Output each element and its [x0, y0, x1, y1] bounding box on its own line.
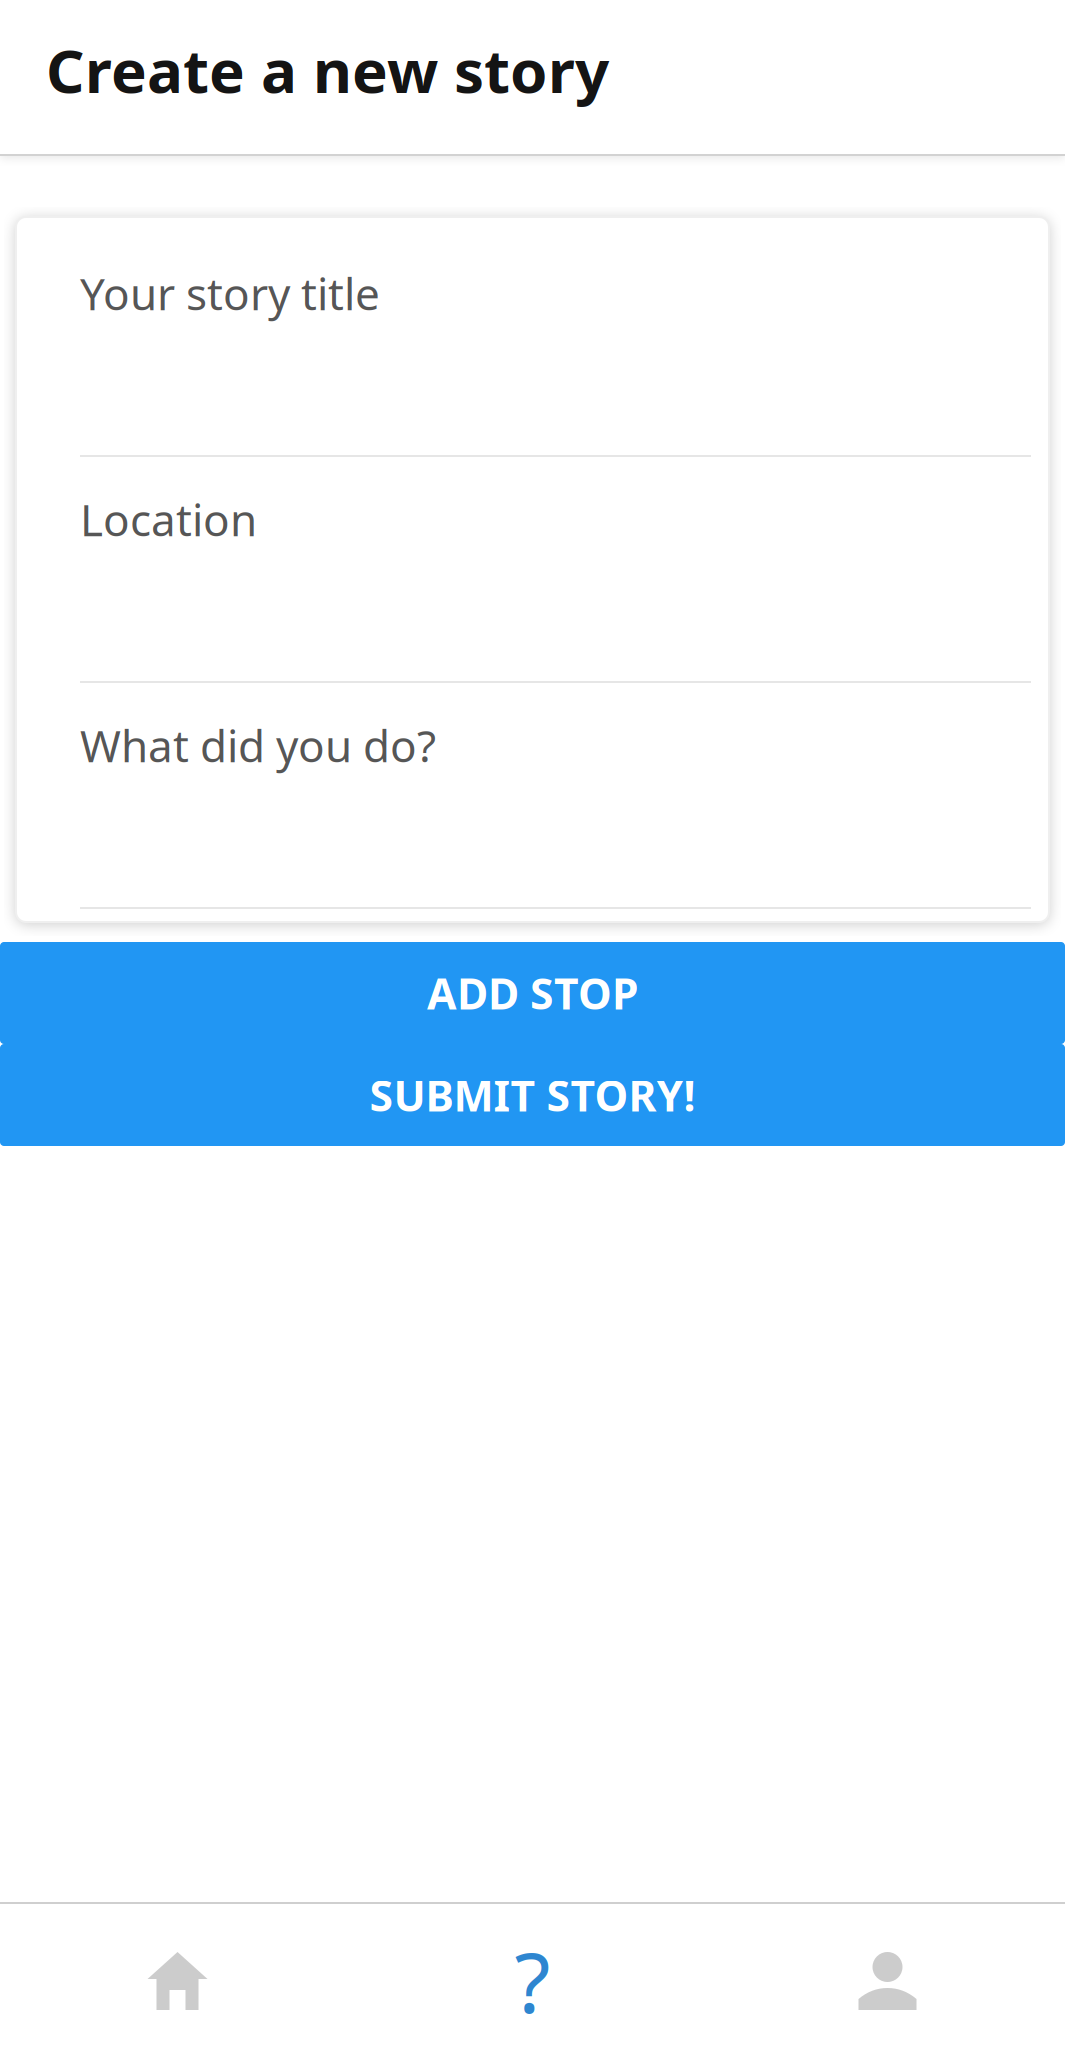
button[interactable]: ADD STOP	[0, 942, 1065, 1044]
button[interactable]: Your story title	[16, 231, 1049, 457]
staticText: ?	[514, 1926, 550, 2036]
staticText: SUBMIT STORY!	[369, 1067, 695, 1123]
button[interactable]: SUBMIT STORY!	[0, 1044, 1065, 1146]
button[interactable]: Location	[16, 457, 1049, 683]
staticText: ADD STOP	[427, 965, 638, 1021]
button[interactable]: Home	[0, 1904, 355, 2048]
staticText: Create a new story	[46, 30, 609, 110]
staticText: What did you do?	[80, 716, 436, 774]
button[interactable]: What did you do?	[16, 683, 1049, 909]
button[interactable]: Help	[355, 1904, 710, 2048]
staticText: Your story title	[80, 264, 380, 322]
staticText: Location	[80, 490, 257, 548]
button[interactable]: Profile	[710, 1904, 1065, 2048]
